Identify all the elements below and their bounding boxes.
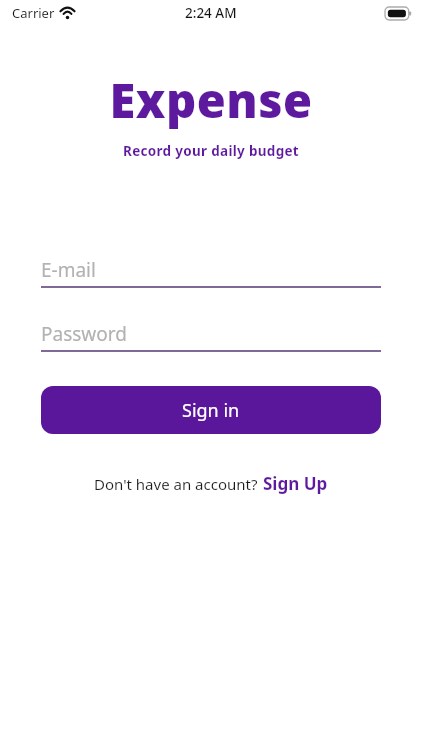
- button[interactable]: E-mail: [41, 254, 381, 288]
- button[interactable]: Sign Up: [262, 470, 329, 497]
- staticText: Password: [41, 321, 127, 347]
- staticText: Record your daily budget: [0, 142, 422, 160]
- staticText: 2:24 AM: [185, 4, 237, 22]
- staticText: Don't have an account?: [94, 474, 262, 494]
- button[interactable]: Password: [41, 318, 381, 352]
- staticText: E-mail: [41, 257, 96, 283]
- staticText: Carrier: [12, 4, 55, 22]
- staticText: Sign in: [182, 398, 240, 423]
- staticText: Sign Up: [263, 472, 328, 495]
- staticText: Expense: [0, 68, 422, 132]
- button[interactable]: Sign in: [41, 386, 381, 434]
